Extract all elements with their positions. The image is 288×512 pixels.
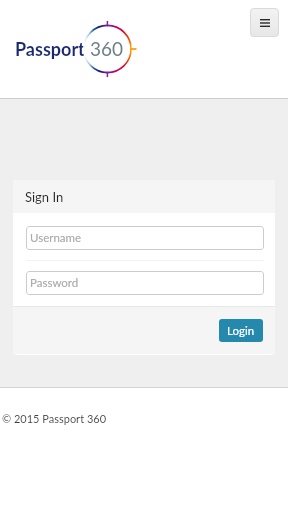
staticText: 360	[90, 37, 124, 60]
button[interactable]: Password	[26, 271, 264, 295]
staticText: Sign In	[25, 189, 64, 205]
staticText: Password	[30, 276, 79, 290]
staticText: Passport	[15, 38, 85, 60]
button[interactable]: Login	[219, 319, 263, 342]
button[interactable]: Username	[26, 226, 264, 250]
button[interactable]: Menu	[250, 8, 279, 37]
staticText: Username	[30, 231, 82, 245]
staticText: Login	[227, 324, 255, 338]
staticText: © 2015 Passport 360	[2, 412, 107, 425]
